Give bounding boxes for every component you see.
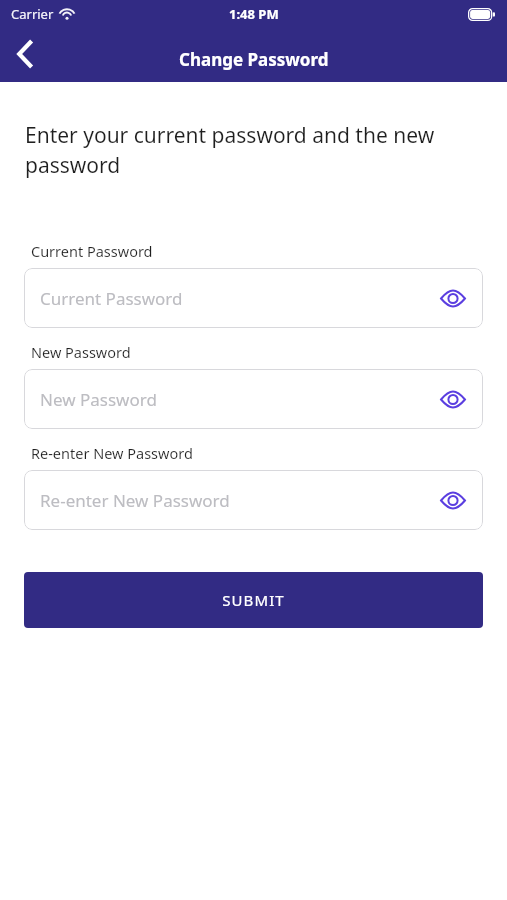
staticText: New Password — [40, 388, 157, 411]
staticText: Current Password — [31, 241, 153, 261]
button[interactable]: Show password — [435, 280, 471, 316]
button[interactable]: Back — [0, 28, 52, 80]
staticText: Carrier — [11, 5, 54, 23]
staticText: Change Password — [179, 48, 329, 71]
button[interactable]: SUBMIT — [24, 572, 483, 628]
staticText: Re-enter New Password — [31, 443, 193, 463]
staticText: SUBMIT — [222, 590, 285, 610]
button[interactable]: Show password — [435, 482, 471, 518]
button[interactable]: Re-enter New Password — [24, 470, 483, 530]
button[interactable]: New Password — [24, 369, 483, 429]
staticText: New Password — [31, 342, 131, 362]
staticText: Re-enter New Password — [40, 489, 230, 512]
staticText: 1:48 PM — [229, 5, 279, 23]
staticText: Current Password — [40, 287, 183, 310]
staticText: Enter your current password and the new … — [25, 121, 477, 179]
button[interactable]: Current Password — [24, 268, 483, 328]
button[interactable]: Show password — [435, 381, 471, 417]
